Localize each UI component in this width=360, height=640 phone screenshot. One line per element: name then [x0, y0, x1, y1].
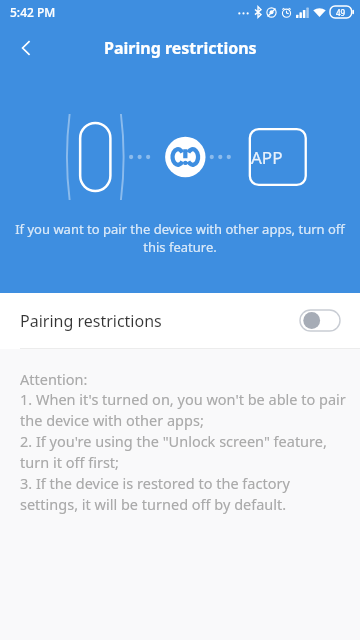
button[interactable]: Pairing restrictions [0, 293, 360, 348]
button[interactable]: Back [6, 28, 46, 68]
staticText: If you want to pair the device with othe… [6, 220, 354, 256]
staticText: Pairing restrictions [20, 310, 162, 332]
staticText: 5:42 PM [10, 4, 56, 20]
staticText: APP [251, 146, 283, 169]
staticText: 49 [336, 7, 346, 18]
staticText: Pairing restrictions [104, 37, 257, 59]
button[interactable]: Pairing restrictions toggle [300, 310, 340, 331]
staticText: Attention: 1. When it's turned on, you w… [20, 369, 346, 515]
